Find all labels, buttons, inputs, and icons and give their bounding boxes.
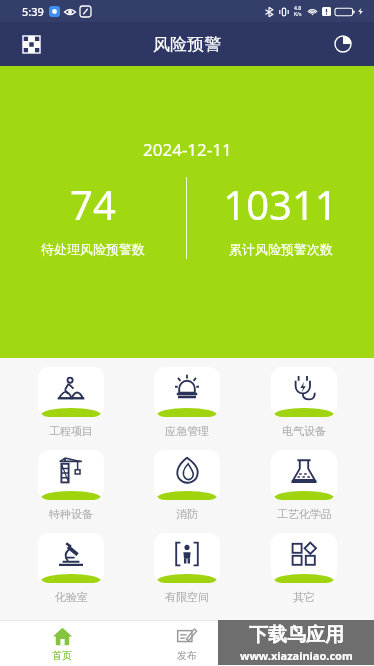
staticText: 10311 [223,177,338,231]
staticText: 化验室 [55,590,88,604]
staticText: 首页 [52,649,72,662]
button[interactable]: 其它 [258,533,350,604]
button[interactable]: 发布 [124,621,249,666]
staticText: 74 [70,177,116,231]
staticText: 有限空间 [165,590,209,604]
button[interactable]: 首页 [0,621,124,666]
button[interactable]: 10311 [187,177,374,257]
staticText: 2024-12-11 [143,138,232,161]
staticText: 风险预警 [153,34,221,55]
button[interactable]: 化验室 [25,533,117,604]
staticText: 待处理风险预警数 [41,241,145,257]
staticText: www.xiazainiao.com [240,648,353,663]
button[interactable]: 电气设备 [258,367,350,438]
staticText: 工艺化学品 [277,507,332,521]
staticText: 应急管理 [165,424,209,438]
button[interactable]: 有限空间 [141,533,233,604]
staticText: 其它 [293,590,315,604]
button[interactable]: Statistics [326,27,360,61]
button[interactable]: 工程项目 [25,367,117,438]
staticText: 5:39 [22,4,44,19]
staticText: 发布 [177,649,197,662]
staticText: 工程项目 [49,424,93,438]
button[interactable]: 消防 [141,450,233,521]
staticText: 4.8 K/s [294,5,302,18]
button[interactable]: 特种设备 [25,450,117,521]
button[interactable]: 工艺化学品 [258,450,350,521]
staticText: 特种设备 [49,507,93,521]
staticText: 消防 [176,507,198,521]
staticText: 下载鸟应用 [249,623,344,647]
button[interactable]: 应急管理 [141,367,233,438]
staticText: 电气设备 [282,424,326,438]
button[interactable]: 74 [0,177,186,257]
staticText: 累计风险预警次数 [229,241,333,257]
button[interactable]: Menu [14,27,48,61]
